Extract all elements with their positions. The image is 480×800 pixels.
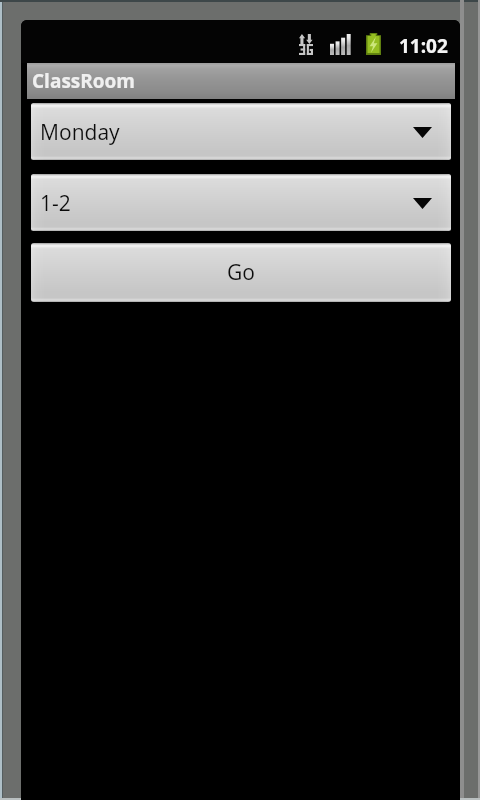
button[interactable]: Monday <box>31 103 451 160</box>
other: Signal strength <box>330 34 351 55</box>
staticText: 11:02 <box>399 33 448 59</box>
other: Battery charging <box>366 33 381 55</box>
other: 3G network <box>299 44 313 55</box>
staticText: Go <box>227 258 255 287</box>
button[interactable]: Go <box>31 243 451 302</box>
staticText: Monday <box>40 118 120 147</box>
button[interactable]: 1-2 <box>31 174 451 231</box>
staticText: 1-2 <box>40 189 71 218</box>
other: Mobile data active <box>299 34 313 44</box>
staticText: ClassRoom <box>32 68 135 94</box>
